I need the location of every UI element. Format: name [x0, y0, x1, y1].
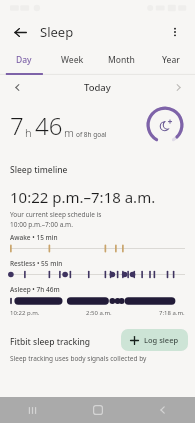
button[interactable]: Year — [146, 48, 195, 72]
button[interactable]: Log sleep — [121, 329, 188, 351]
staticText: 46 — [35, 109, 63, 142]
staticText: Sleep tracking uses body signals collect… — [10, 354, 147, 363]
staticText: Month — [108, 54, 135, 66]
button[interactable]: Sleep goal progress — [145, 105, 185, 145]
button[interactable]: Previous day — [8, 78, 26, 96]
button[interactable]: Month — [97, 48, 146, 72]
staticText: Day — [16, 54, 32, 66]
button[interactable]: Week — [48, 48, 97, 72]
button[interactable]: More options — [164, 21, 186, 43]
staticText: m — [64, 125, 74, 140]
button[interactable]: Next day — [169, 78, 187, 96]
staticText: of 8h goal — [76, 130, 107, 139]
staticText: 10:00 p.m.–7:00 a.m. — [10, 220, 73, 229]
staticText: Restless • 55 min — [10, 259, 63, 268]
staticText: Sleep — [40, 23, 74, 41]
staticText: 7 — [10, 109, 24, 142]
staticText: 2:50 a.m. — [86, 309, 112, 317]
staticText: Today — [84, 81, 111, 94]
staticText: Sleep timeline — [10, 164, 68, 176]
staticText: Fitbit sleep tracking — [10, 336, 91, 348]
staticText: 7:18 a.m. — [159, 309, 185, 317]
button[interactable]: Today — [26, 75, 169, 99]
button[interactable]: Recent apps — [0, 397, 65, 423]
staticText: Log sleep — [144, 335, 179, 345]
staticText: 10:22 p.m.–7:18 a.m. — [10, 187, 156, 207]
staticText: Asleep • 7h 46m — [10, 285, 60, 294]
button[interactable]: Home — [65, 397, 130, 423]
button[interactable]: Back — [9, 21, 31, 43]
staticText: h — [25, 125, 32, 140]
staticText: Year — [162, 54, 180, 66]
staticText: Week — [61, 54, 84, 66]
staticText: Your current sleep schedule is — [10, 210, 102, 219]
staticText: Awake • 15 min — [10, 233, 58, 242]
staticText: 10:22 p.m. — [10, 309, 40, 317]
button[interactable]: Day — [0, 48, 48, 72]
